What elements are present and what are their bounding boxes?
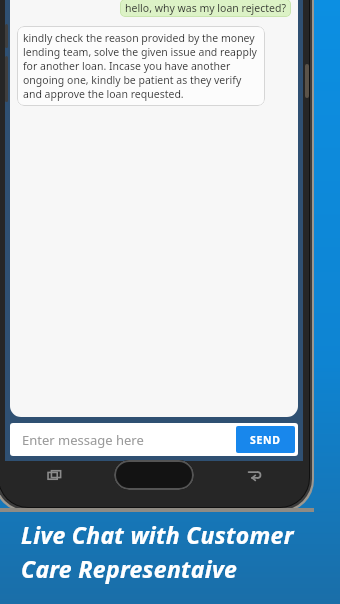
- button[interactable]: Recent apps: [0, 454, 114, 496]
- button[interactable]: SEND: [236, 426, 295, 453]
- staticText: kindly check the reason provided by the …: [23, 31, 259, 101]
- button[interactable]: kindly check the reason provided by the …: [17, 26, 265, 106]
- staticText: hello, why was my loan rejected?: [125, 1, 286, 15]
- button[interactable]: Enter message here: [10, 423, 233, 456]
- staticText: Live Chat with Customer: [21, 519, 294, 550]
- button[interactable]: hello, why was my loan rejected?: [120, 0, 291, 17]
- button[interactable]: Home: [114, 460, 194, 490]
- staticText: Enter message here: [22, 431, 144, 449]
- staticText: Care Representaive: [21, 553, 238, 584]
- staticText: SEND: [250, 433, 281, 447]
- button[interactable]: Back: [194, 454, 314, 496]
